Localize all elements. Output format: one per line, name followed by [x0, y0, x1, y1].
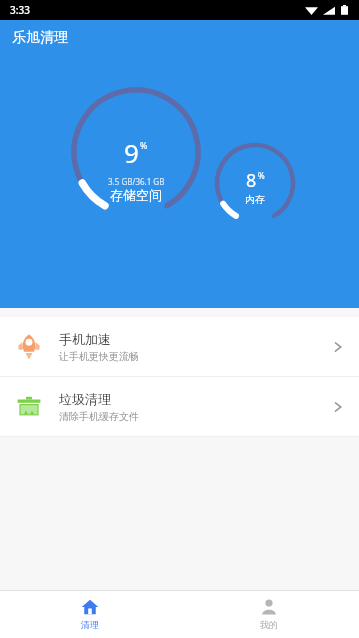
staticText: 手机加速 — [59, 331, 111, 347]
staticText: % — [258, 170, 265, 181]
other: 清理 — [81, 598, 99, 616]
staticText: 乐旭清理 — [12, 29, 68, 47]
staticText: 3:33 — [10, 3, 30, 17]
other: 我的 — [260, 598, 278, 616]
staticText: 8 — [246, 168, 257, 193]
staticText: 垃圾清理 — [59, 391, 111, 407]
staticText: 让手机更快更流畅 — [59, 350, 139, 363]
button[interactable]: 清理 — [0, 591, 179, 638]
button[interactable]: 我的 — [179, 591, 359, 638]
staticText: 内存 — [245, 193, 265, 206]
staticText: 存储空间 — [110, 187, 162, 203]
staticText: 3.5 GB/36.1 GB — [108, 176, 165, 187]
staticText: 我的 — [260, 619, 278, 630]
button[interactable]: 手机加速 — [0, 317, 359, 376]
staticText: 9 — [124, 135, 139, 170]
staticText: % — [140, 139, 148, 151]
staticText: 清除手机缓存文件 — [59, 410, 139, 423]
button[interactable]: 垃圾清理 — [0, 377, 359, 436]
staticText: 清理 — [81, 619, 99, 630]
